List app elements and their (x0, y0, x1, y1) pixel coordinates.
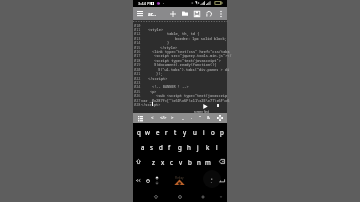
staticText: var _0x287f=["\x6D\x6F\x11\x2E\x77\x6F\x… (141, 98, 230, 103)
button[interactable]: Undo (203, 7, 214, 20)
button[interactable]: Move cursor (215, 113, 224, 123)
button[interactable]: e (153, 126, 162, 137)
staticText: 013 (134, 36, 141, 41)
staticText: r (165, 128, 168, 136)
staticText: & (207, 115, 211, 121)
staticText: 018 (134, 58, 141, 63)
staticText: 024 (134, 84, 141, 89)
button[interactable]: i (199, 126, 208, 137)
button[interactable]: k (203, 141, 212, 152)
staticText: g (178, 143, 182, 151)
button[interactable]: h (184, 141, 193, 152)
staticText: <sub <script type="text/javascrip (156, 93, 228, 98)
staticText: 021 (134, 71, 141, 76)
button[interactable]: Enter (217, 175, 226, 186)
staticText: _ (182, 115, 184, 121)
button[interactable]: t (171, 126, 180, 137)
button[interactable]: w (143, 126, 152, 137)
button[interactable]: _ (178, 113, 187, 123)
staticText: e (156, 128, 160, 136)
button[interactable]: Cursor keys (152, 175, 161, 186)
button[interactable]: ar... (146, 7, 168, 20)
button[interactable]: p (217, 126, 226, 137)
staticText: 010 (134, 23, 141, 28)
staticText: y (183, 128, 187, 136)
staticText: 026 (134, 93, 141, 98)
button[interactable]: Previous keyboard (134, 175, 143, 186)
button[interactable]: s (147, 141, 156, 152)
staticText: 027 (134, 98, 141, 103)
staticText: u (193, 128, 197, 136)
button[interactable]: z (149, 156, 158, 167)
button[interactable]: l (212, 141, 221, 152)
staticText: . (191, 115, 193, 121)
staticText: screen find (194, 110, 210, 113)
button[interactable]: Comma (207, 175, 216, 186)
staticText: 022 (134, 76, 141, 81)
button[interactable]: c (167, 156, 176, 167)
button[interactable]: u (190, 126, 199, 137)
button[interactable]: " (195, 113, 204, 123)
button[interactable]: Backspace (217, 156, 226, 167)
button[interactable]: o (208, 126, 217, 137)
button[interactable]: Back (150, 192, 162, 202)
button[interactable]: Space (166, 171, 193, 190)
button[interactable]: Hide keyboard (215, 192, 227, 202)
button[interactable]: a (138, 141, 147, 152)
staticText: d (159, 143, 163, 151)
button[interactable]: </> (159, 113, 168, 123)
staticText: 028 (134, 102, 141, 107)
staticText: <script src="jquery.tools.min.js"></ (154, 53, 232, 58)
button[interactable]: Recent apps (197, 192, 209, 202)
staticText: > (171, 115, 174, 121)
button[interactable]: g (175, 141, 184, 152)
button[interactable]: j (193, 141, 202, 152)
staticText: f (168, 143, 171, 151)
button[interactable]: < (148, 113, 157, 123)
button[interactable]: . (187, 113, 196, 123)
button[interactable]: Save (191, 7, 202, 20)
button[interactable]: q (134, 126, 143, 137)
staticText: i (203, 128, 205, 136)
staticText: border: 1px solid black; (175, 36, 227, 41)
staticText: 3:44 PM (138, 1, 154, 6)
staticText: <p> (150, 89, 157, 94)
button[interactable]: New file (167, 7, 178, 20)
staticText: w (145, 128, 150, 136)
staticText: n (197, 158, 201, 166)
button[interactable]: & (204, 113, 213, 123)
staticText: 011 (134, 27, 141, 32)
button[interactable]: d (156, 141, 165, 152)
button[interactable]: m (203, 156, 212, 167)
button[interactable]: y (180, 126, 189, 137)
button[interactable]: Emoji (143, 175, 152, 186)
button[interactable]: Navigation menu (135, 7, 144, 20)
staticText: h (187, 143, 191, 151)
button[interactable]: More options (217, 7, 225, 20)
button[interactable]: > (168, 113, 177, 123)
staticText: } (167, 40, 170, 45)
staticText: 023 (134, 80, 141, 85)
button[interactable]: b (185, 156, 194, 167)
button[interactable]: f (165, 141, 174, 152)
staticText: p (220, 128, 224, 136)
staticText: </script> (141, 102, 161, 107)
button[interactable]: n (194, 156, 203, 167)
staticText: table, th, td { (167, 31, 200, 36)
staticText: $(document).ready(function(){ (154, 62, 217, 67)
staticText: k (206, 143, 210, 151)
staticText: 015 (134, 45, 141, 50)
button[interactable]: Home (174, 192, 186, 202)
staticText: <style> (148, 27, 164, 32)
staticText: j (197, 143, 199, 151)
button[interactable]: Snippets (136, 113, 145, 123)
staticText: o (211, 128, 215, 136)
button[interactable]: v (176, 156, 185, 167)
button[interactable]: Open file (179, 7, 190, 20)
staticText: $("ul.tabs").tabs("div.panes > di (158, 67, 230, 72)
button[interactable]: x (158, 156, 167, 167)
button[interactable]: r (162, 126, 171, 137)
staticText: < (151, 115, 154, 121)
staticText: q (137, 128, 141, 136)
button[interactable]: Shift (134, 156, 143, 167)
